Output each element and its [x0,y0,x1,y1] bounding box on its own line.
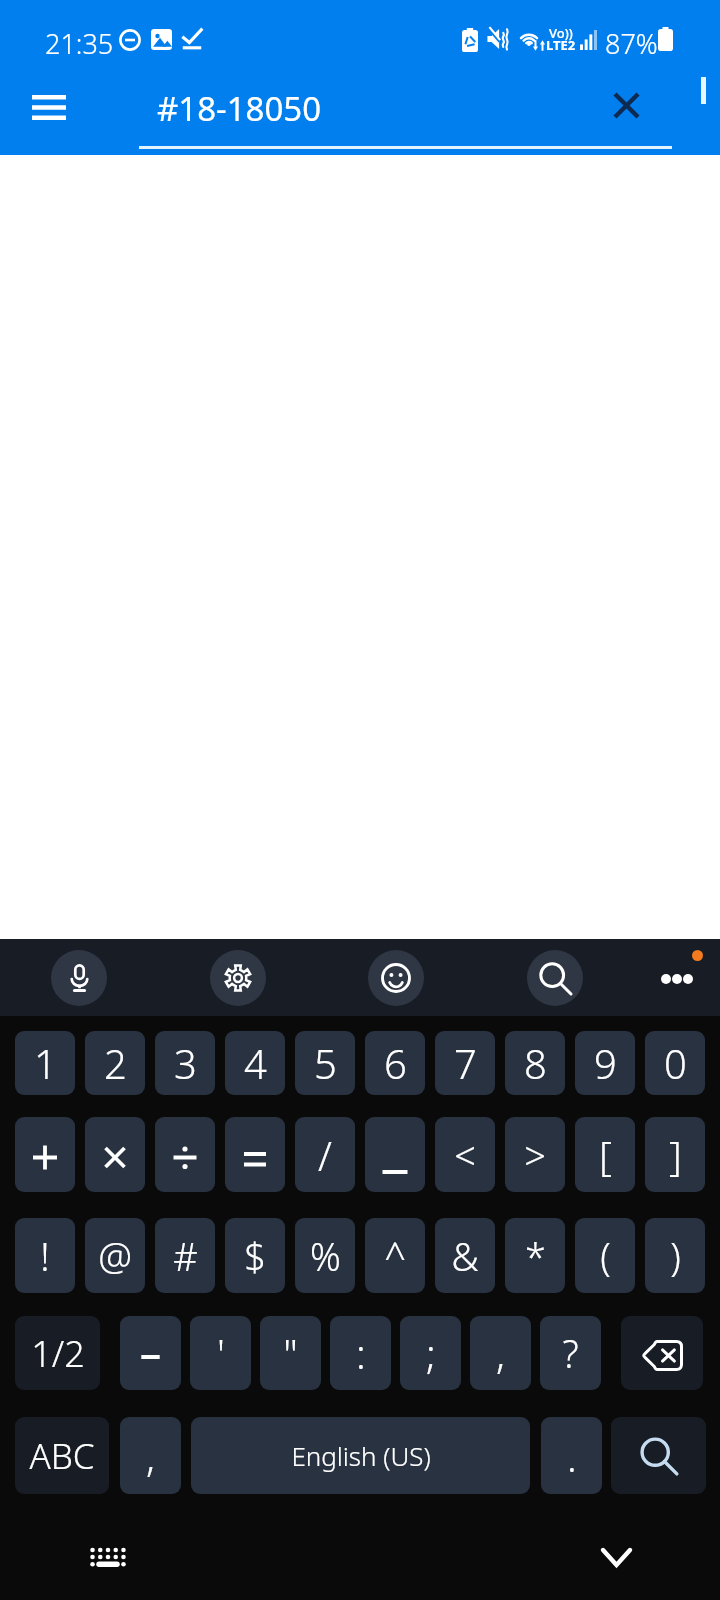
button[interactable]: @ [85,1218,145,1293]
staticText: ABC [29,1432,95,1480]
button[interactable] [365,1117,425,1192]
button[interactable]: 7 [435,1031,495,1095]
button[interactable]: 0 [645,1031,705,1095]
button[interactable] [85,1117,145,1192]
staticText: 1/2 [31,1329,85,1378]
button[interactable]: 5 [295,1031,355,1095]
button[interactable]: 1/2 [15,1316,100,1390]
staticText: 3 [174,1036,197,1090]
button[interactable]: ( [575,1218,635,1293]
staticText: 21:35 [45,25,114,62]
staticText: , [146,1429,155,1483]
button[interactable]: : [330,1316,391,1390]
button[interactable]: Change keyboard [78,1526,138,1586]
staticText: Vo)) [549,24,573,42]
button[interactable]: , [120,1417,181,1494]
staticText: 9 [594,1036,617,1090]
staticText: ( [600,1230,611,1282]
staticText: 7 [454,1036,477,1090]
button[interactable]: $ [225,1218,285,1293]
button[interactable]: 3 [155,1031,215,1095]
staticText: & [451,1230,479,1282]
staticText: % [310,1230,341,1282]
button[interactable]: Voice input [51,950,107,1006]
staticText: ^ [384,1230,406,1282]
staticText: #18-18050 [157,86,322,131]
button[interactable]: " [260,1316,321,1390]
button[interactable]: ; [400,1316,461,1390]
button[interactable] [155,1117,215,1192]
staticText: LTE2 [546,36,576,54]
staticText: @ [98,1230,132,1282]
button[interactable]: * [505,1218,565,1293]
staticText: ; [426,1326,436,1380]
staticText: 1 [34,1036,57,1090]
staticText: [ [599,1128,612,1182]
staticText: 4 [244,1036,267,1090]
button[interactable]: 4 [225,1031,285,1095]
button[interactable]: ^ [365,1218,425,1293]
button[interactable] [225,1117,285,1192]
staticText: < [454,1129,476,1181]
staticText: , [496,1326,505,1380]
button[interactable]: More options [646,948,708,1010]
button[interactable]: Keyboard settings [210,950,266,1006]
staticText: ' [217,1326,225,1380]
button[interactable]: . [541,1417,602,1494]
staticText: " [283,1326,298,1380]
button[interactable]: Emoji [368,950,424,1006]
button[interactable]: # [155,1218,215,1293]
button[interactable]: > [505,1117,565,1192]
staticText: 87% [605,25,658,62]
button[interactable]: & [435,1218,495,1293]
staticText: 8 [524,1036,547,1090]
staticText: ) [670,1230,681,1282]
staticText: ? [562,1327,579,1379]
staticText: . [567,1429,577,1483]
button[interactable]: / [295,1117,355,1192]
button[interactable]: [ [575,1117,635,1192]
button[interactable]: ? [540,1316,601,1390]
button[interactable]: 2 [85,1031,145,1095]
button[interactable]: ! [15,1218,75,1293]
staticText: * [525,1230,546,1282]
staticText: $ [244,1230,266,1282]
button[interactable]: < [435,1117,495,1192]
staticText: ] [669,1128,682,1182]
button[interactable]: ] [645,1117,705,1192]
staticText: 6 [384,1036,407,1090]
staticText: > [524,1129,546,1181]
staticText: ! [40,1230,50,1282]
staticText: : [356,1326,366,1380]
button[interactable]: 9 [575,1031,635,1095]
staticText: / [318,1128,332,1182]
button[interactable]: ) [645,1218,705,1293]
button[interactable]: ABC [15,1417,109,1494]
button[interactable]: 6 [365,1031,425,1095]
button[interactable]: 1 [15,1031,75,1095]
staticText: English (US) [291,1438,431,1473]
button[interactable]: English (US) [191,1417,530,1494]
button[interactable]: Hide keyboard [586,1527,646,1587]
button[interactable]: Open navigation menu [18,77,79,138]
button[interactable]: , [470,1316,531,1390]
button[interactable]: ' [190,1316,251,1390]
button[interactable]: 8 [505,1031,565,1095]
staticText: 0 [664,1036,687,1090]
staticText: 5 [314,1036,337,1090]
button[interactable]: Clear search text [596,75,657,136]
button[interactable]: Backspace [621,1316,703,1390]
staticText: # [173,1230,198,1282]
button[interactable]: Search [527,950,583,1006]
staticText: 2 [104,1036,127,1090]
button[interactable]: Search [611,1417,706,1494]
button[interactable]: % [295,1218,355,1293]
button[interactable] [15,1117,75,1192]
button[interactable] [120,1316,181,1390]
